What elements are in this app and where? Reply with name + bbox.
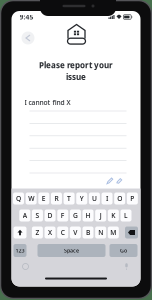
staticText: G [73, 211, 78, 220]
button[interactable]: U [89, 192, 100, 204]
staticText: D [48, 211, 53, 220]
button[interactable]: Attach file [116, 178, 122, 184]
button[interactable]: B [82, 226, 93, 238]
staticText: Z [35, 228, 39, 237]
button[interactable]: Z [32, 226, 43, 238]
button[interactable]: Emoji [22, 263, 28, 269]
staticText: C [61, 228, 65, 237]
staticText: I cannot find X [24, 98, 70, 107]
staticText: Q [16, 194, 21, 203]
staticText: E [42, 194, 46, 203]
button[interactable]: Shift [13, 226, 26, 238]
staticText: T [67, 194, 71, 203]
button[interactable]: M [108, 226, 119, 238]
staticText: I [106, 194, 108, 203]
staticText: Y [80, 194, 84, 203]
staticText: W [28, 194, 34, 203]
button[interactable]: L [120, 209, 131, 221]
button[interactable]: Q [13, 192, 24, 204]
button[interactable]: Space [37, 244, 105, 257]
button[interactable]: C [57, 226, 68, 238]
button[interactable]: O [114, 192, 125, 204]
button[interactable]: 123 [13, 244, 26, 257]
button[interactable]: J [95, 209, 106, 221]
staticText: J [100, 211, 102, 220]
button[interactable]: Delete [125, 226, 138, 238]
button[interactable]: D [45, 209, 56, 221]
staticText: S [35, 211, 39, 220]
staticText: B [86, 228, 90, 237]
staticText: H [85, 211, 90, 220]
button[interactable]: Dictate [124, 263, 129, 270]
staticText: V [73, 228, 77, 237]
button[interactable]: Y [76, 192, 87, 204]
staticText: N [98, 228, 103, 237]
staticText: 123 [15, 247, 24, 254]
button[interactable]: Back [20, 30, 36, 46]
button[interactable]: P [127, 192, 138, 204]
button[interactable]: Draw [106, 178, 113, 184]
button[interactable]: H [82, 209, 93, 221]
staticText: K [111, 211, 115, 220]
button[interactable]: X [44, 226, 55, 238]
button[interactable]: R [51, 192, 62, 204]
button[interactable]: F [57, 209, 68, 221]
staticText: P [130, 194, 134, 203]
staticText: 9:45 [19, 13, 33, 21]
staticText: M [110, 228, 116, 237]
staticText: F [61, 211, 65, 220]
button[interactable]: V [70, 226, 81, 238]
button[interactable]: T [64, 192, 75, 204]
button[interactable]: S [32, 209, 43, 221]
button[interactable]: E [38, 192, 49, 204]
staticText: X [48, 228, 52, 237]
staticText: U [92, 194, 97, 203]
staticText: issue [66, 71, 86, 82]
button[interactable]: N [95, 226, 106, 238]
button[interactable]: K [108, 209, 119, 221]
staticText: A [23, 211, 27, 220]
button[interactable]: I [101, 192, 112, 204]
staticText: Go [120, 247, 127, 254]
staticText: R [54, 194, 58, 203]
button[interactable]: G [70, 209, 81, 221]
staticText: L [124, 211, 128, 220]
staticText: O [117, 194, 122, 203]
staticText: Please report your [39, 60, 113, 70]
staticText: Space [64, 247, 79, 254]
button[interactable]: A [19, 209, 30, 221]
button[interactable]: Go [109, 244, 137, 257]
button[interactable]: W [26, 192, 37, 204]
